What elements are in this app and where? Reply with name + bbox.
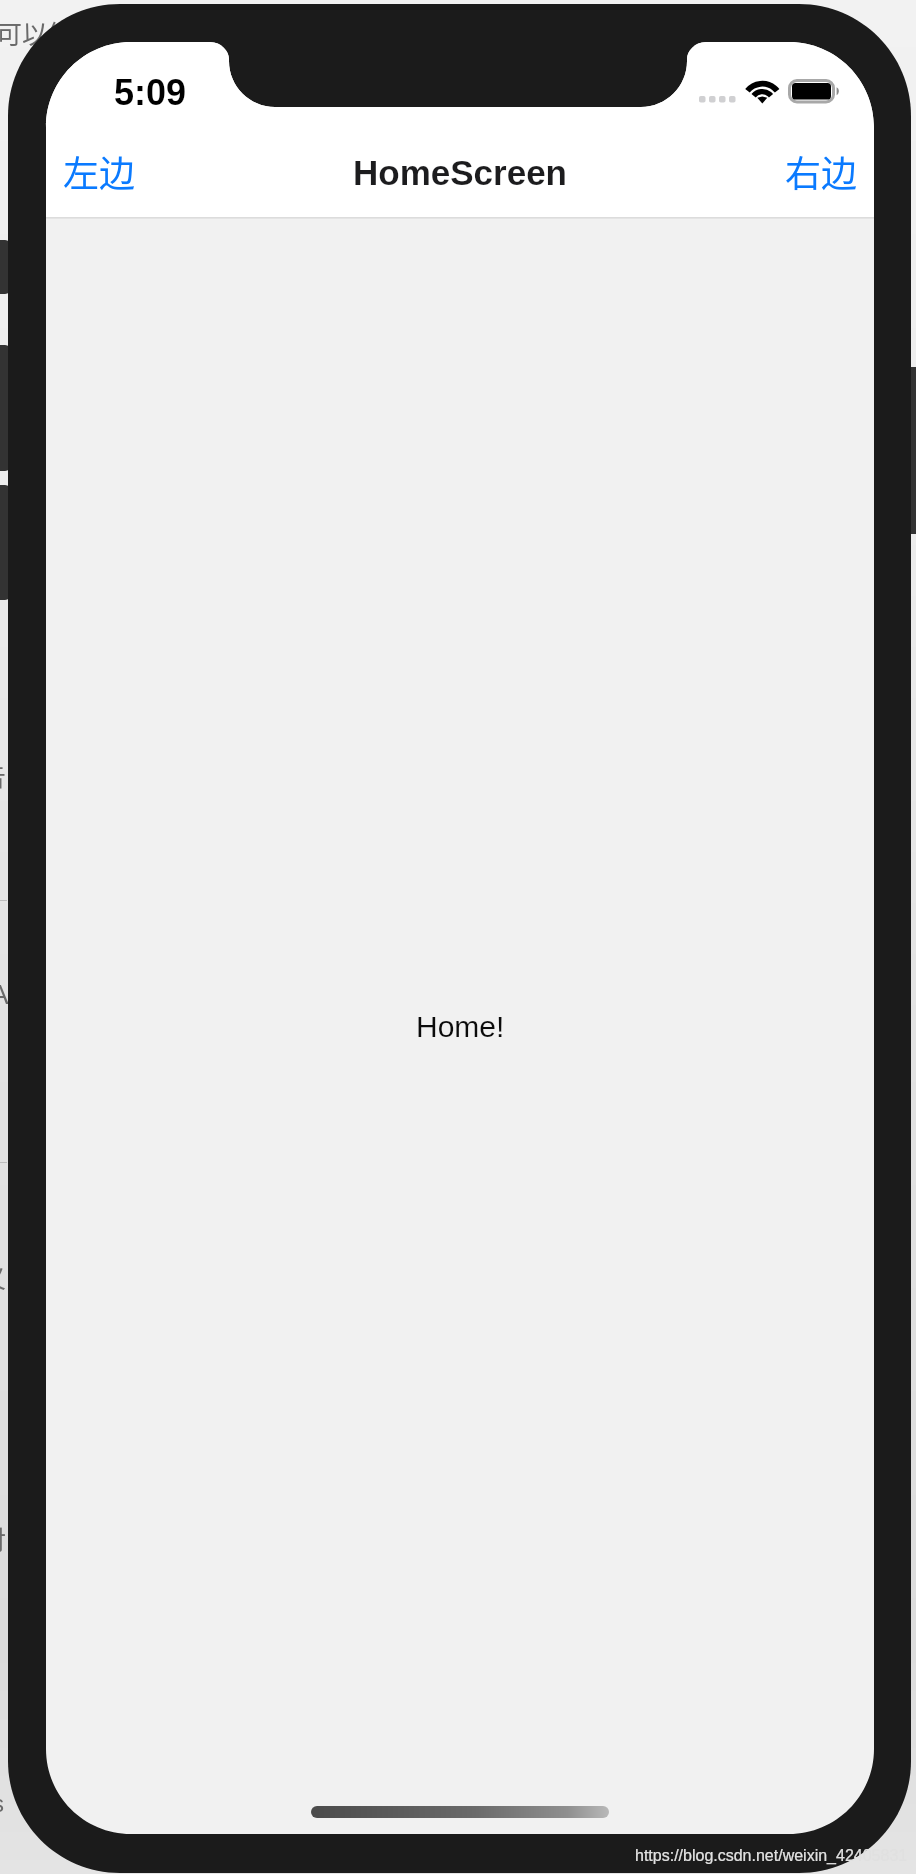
staticText: 右边 — [785, 145, 858, 197]
staticText: 告 — [0, 756, 7, 794]
staticText: 对 — [0, 1520, 7, 1558]
button[interactable]: 右边 — [769, 127, 874, 215]
staticText: HomeScreen — [353, 153, 567, 192]
staticText: 可以给 — [0, 14, 75, 52]
button[interactable]: 左边 — [47, 127, 152, 215]
staticText: 义 — [0, 1258, 7, 1296]
staticText: 左边 — [63, 145, 136, 197]
staticText: Home! — [416, 1010, 505, 1044]
staticText: 5:09 — [114, 72, 187, 112]
staticText: https://blog.csdn.net/weixin_42405831 — [635, 1847, 908, 1865]
staticText: s — [0, 1790, 4, 1817]
staticText: A — [0, 979, 9, 1010]
